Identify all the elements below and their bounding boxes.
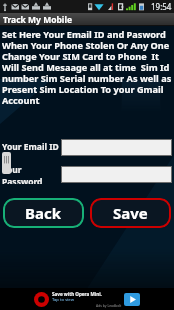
- button[interactable]: [61, 139, 172, 156]
- staticText: Your Password: [2, 164, 60, 184]
- staticText: 19:54: [151, 1, 172, 12]
- button[interactable]: Install: [124, 293, 140, 306]
- staticText: Your Email ID: [2, 141, 60, 153]
- button[interactable]: [61, 166, 172, 183]
- staticText: Tap to view: [52, 297, 74, 303]
- staticText: Back: [25, 203, 62, 223]
- button[interactable]: Back: [3, 198, 84, 228]
- staticText: Save: [113, 203, 148, 223]
- button[interactable]: Save: [90, 198, 171, 228]
- staticText: Track My Mobile: [3, 14, 72, 26]
- staticText: Save with Opera Mini. Download free ...: [52, 291, 122, 297]
- staticText: Set Here Your Email ID and Pasword When …: [2, 28, 172, 106]
- staticText: Ads by Leadbolt: [96, 303, 122, 308]
- button[interactable]: Save with Opera Mini. Download free ...: [0, 288, 174, 310]
